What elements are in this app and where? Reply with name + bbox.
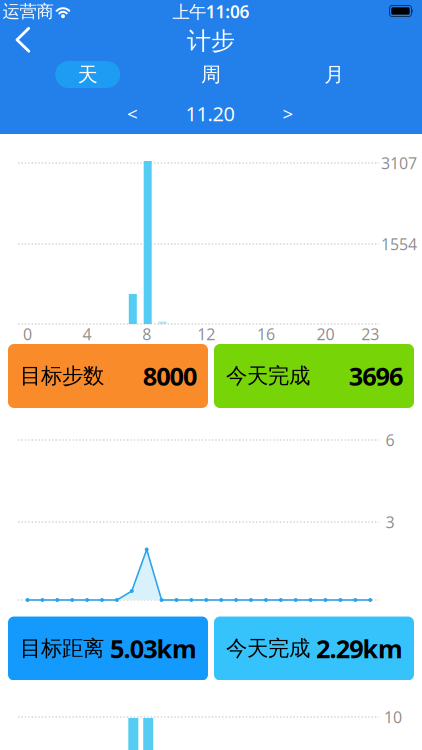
button[interactable]: 今天完成: [214, 344, 414, 408]
button[interactable]: 目标距离: [8, 616, 208, 680]
staticText: 10: [384, 706, 402, 728]
button[interactable]: <: [117, 101, 147, 125]
staticText: 3: [385, 511, 394, 533]
staticText: 今天完成: [226, 635, 310, 662]
staticText: 20: [316, 323, 334, 345]
staticText: 天: [78, 62, 98, 87]
staticText: 4: [83, 323, 92, 345]
staticText: 0: [23, 323, 32, 345]
staticText: 月: [324, 62, 344, 87]
staticText: 8000: [143, 359, 197, 393]
staticText: <: [127, 101, 138, 126]
button[interactable]: 目标步数: [8, 344, 208, 408]
staticText: 23: [361, 323, 379, 345]
staticText: 计步: [187, 26, 235, 56]
staticText: 6: [385, 429, 394, 451]
staticText: 目标步数: [20, 363, 104, 389]
staticText: 5.03km: [110, 632, 197, 665]
button[interactable]: 月: [273, 62, 396, 87]
staticText: 12: [197, 323, 215, 345]
staticText: 周: [201, 62, 221, 87]
button[interactable]: 天: [26, 61, 149, 88]
staticText: 11.20: [185, 100, 234, 127]
staticText: 3696: [349, 359, 403, 393]
button[interactable]: 今天完成: [214, 616, 414, 680]
button[interactable]: 周: [149, 62, 273, 87]
button[interactable]: [15, 27, 31, 53]
staticText: 3107: [381, 152, 417, 174]
staticText: >: [282, 101, 293, 126]
button[interactable]: >: [273, 101, 303, 125]
staticText: 目标距离: [20, 635, 104, 662]
staticText: 2.29km: [316, 632, 403, 665]
staticText: 上午11:06: [172, 0, 250, 23]
staticText: 运营商: [2, 1, 53, 22]
staticText: 16: [257, 323, 275, 345]
staticText: 8: [142, 323, 151, 345]
staticText: 今天完成: [226, 363, 310, 389]
staticText: 1554: [381, 233, 417, 255]
